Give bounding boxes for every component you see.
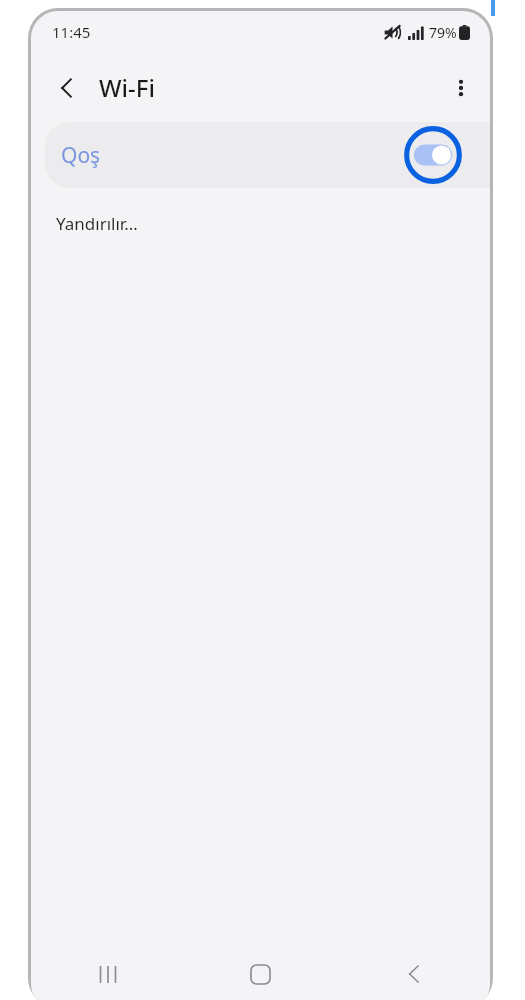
- staticText: Yandırılır...: [56, 212, 138, 235]
- button[interactable]: More options: [438, 65, 484, 111]
- button[interactable]: Wi-Fi toggle: [402, 124, 464, 186]
- button[interactable]: Qoş: [45, 122, 490, 188]
- staticText: 11:45: [52, 22, 91, 42]
- staticText: Qoş: [61, 141, 101, 170]
- staticText: Wi-Fi: [99, 71, 155, 104]
- button[interactable]: Recents: [31, 947, 184, 1000]
- button[interactable]: Home: [184, 947, 337, 1000]
- button[interactable]: Back: [337, 947, 490, 1000]
- staticText: 79%: [429, 23, 457, 42]
- button[interactable]: Back: [44, 65, 90, 111]
